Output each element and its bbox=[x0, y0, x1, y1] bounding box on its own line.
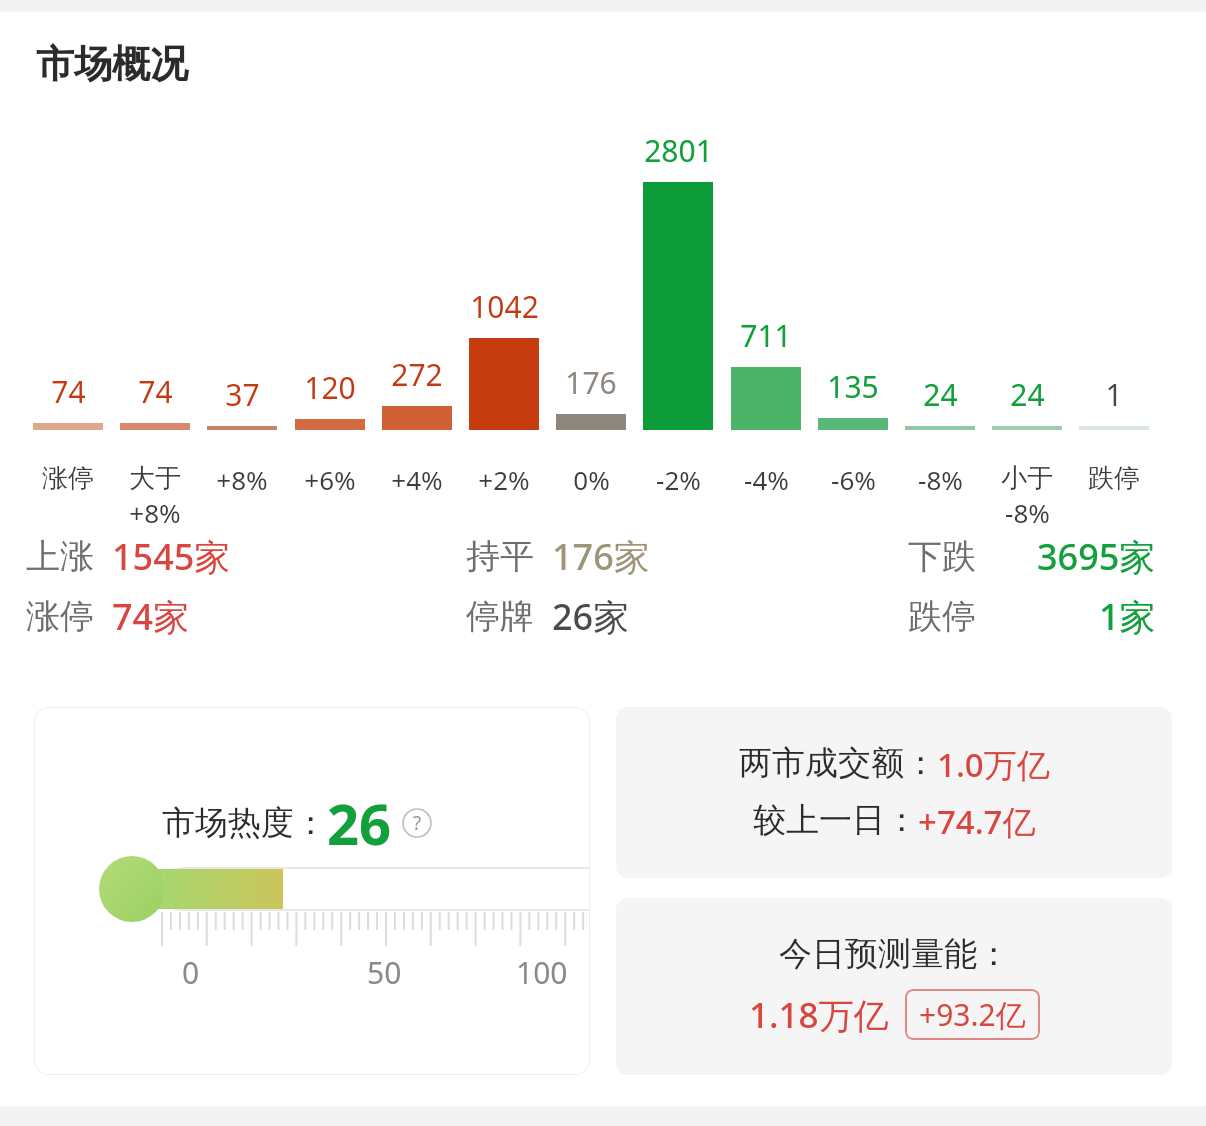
staticText: 两市成交额： bbox=[739, 742, 937, 784]
staticText: 上涨 bbox=[26, 535, 94, 578]
staticText: 持平 bbox=[466, 535, 534, 578]
staticText: 120 bbox=[304, 367, 356, 408]
staticText: 涨停 bbox=[42, 462, 94, 495]
staticText: 24 bbox=[923, 374, 958, 415]
staticText: +74.7亿 bbox=[918, 799, 1036, 844]
staticText: 今日预测量能： bbox=[779, 933, 1010, 975]
button[interactable]: 两市成交额： bbox=[616, 707, 1172, 878]
staticText: 小于 bbox=[1001, 462, 1053, 495]
staticText: 24 bbox=[1010, 374, 1045, 415]
staticText: 50 bbox=[367, 952, 402, 993]
staticText: 74 bbox=[138, 371, 173, 412]
staticText: 跌停 bbox=[1088, 462, 1140, 495]
staticText: +6% bbox=[304, 462, 356, 497]
staticText: 272 bbox=[391, 354, 443, 395]
staticText: +2% bbox=[478, 462, 530, 497]
staticText: 176 bbox=[565, 362, 617, 403]
staticText: +93.2亿 bbox=[919, 994, 1026, 1035]
staticText: 135 bbox=[827, 366, 879, 407]
staticText: 1545家 bbox=[112, 532, 231, 581]
staticText: 711 bbox=[740, 315, 792, 356]
staticText: 大于 bbox=[129, 462, 181, 495]
staticText: -2% bbox=[656, 462, 701, 497]
staticText: 涨停 bbox=[26, 595, 94, 638]
staticText: 176家 bbox=[552, 532, 650, 581]
staticText: 1042 bbox=[470, 286, 539, 327]
staticText: +4% bbox=[391, 462, 443, 497]
button[interactable]: 帮助 bbox=[402, 808, 432, 838]
staticText: 37 bbox=[225, 374, 260, 415]
staticText: -8% bbox=[918, 462, 963, 497]
staticText: -8% bbox=[1005, 495, 1050, 530]
staticText: 市场概况 bbox=[36, 40, 188, 88]
staticText: 1.0万亿 bbox=[937, 742, 1050, 787]
staticText: 2801 bbox=[644, 130, 713, 171]
staticText: +8% bbox=[129, 495, 181, 530]
staticText: 较上一日： bbox=[753, 799, 918, 841]
staticText: -4% bbox=[744, 462, 789, 497]
staticText: +8% bbox=[216, 462, 268, 497]
staticText: 1家 bbox=[1099, 592, 1156, 641]
staticText: 26 bbox=[327, 785, 392, 861]
staticText: 74 bbox=[51, 371, 86, 412]
button[interactable]: 今日预测量能： bbox=[616, 898, 1172, 1075]
staticText: 停牌 bbox=[466, 595, 534, 638]
staticText: 74家 bbox=[112, 592, 190, 641]
staticText: 100 bbox=[516, 952, 568, 993]
button[interactable]: 市场热度： bbox=[34, 707, 590, 1075]
staticText: 下跌 bbox=[908, 535, 976, 578]
staticText: 1.18万亿 bbox=[749, 991, 889, 1039]
staticText: 跌停 bbox=[908, 595, 976, 638]
staticText: 市场热度： bbox=[162, 802, 327, 844]
staticText: ? bbox=[413, 810, 422, 836]
staticText: 26家 bbox=[552, 592, 630, 641]
staticText: 0 bbox=[182, 952, 200, 993]
staticText: 0% bbox=[573, 462, 610, 497]
staticText: 1 bbox=[1105, 374, 1123, 415]
staticText: -6% bbox=[831, 462, 876, 497]
staticText: 3695家 bbox=[1037, 532, 1156, 581]
